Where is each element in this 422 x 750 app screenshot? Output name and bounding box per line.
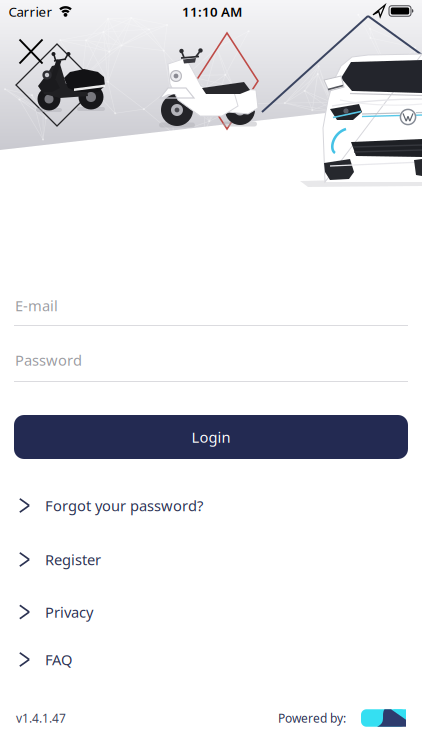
button[interactable]: Login xyxy=(14,415,408,459)
staticText: Register xyxy=(45,550,101,569)
button[interactable]: Password xyxy=(0,350,422,383)
staticText: FAQ xyxy=(45,650,72,669)
staticText: Login xyxy=(191,427,230,447)
button[interactable]: Powered by logo xyxy=(361,709,406,727)
button[interactable]: Forgot your password? xyxy=(0,486,422,524)
button[interactable]: Close xyxy=(11,31,50,71)
button[interactable]: FAQ xyxy=(0,640,422,678)
staticText: Powered by: xyxy=(278,710,346,726)
staticText: Password xyxy=(15,350,82,370)
staticText: 11:10 AM xyxy=(182,3,242,20)
button[interactable]: Privacy xyxy=(0,593,422,631)
button[interactable]: E-mail xyxy=(0,295,422,326)
staticText: Carrier xyxy=(8,3,52,20)
staticText: Forgot your password? xyxy=(45,496,203,515)
staticText: E-mail xyxy=(15,296,58,315)
button[interactable]: Register xyxy=(0,540,422,578)
staticText: Privacy xyxy=(45,602,93,622)
staticText: v1.4.1.47 xyxy=(16,710,66,726)
